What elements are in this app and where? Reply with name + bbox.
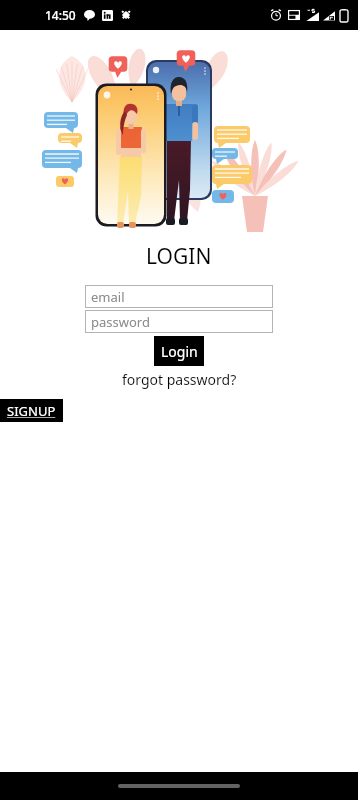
staticText: SIGNUP	[7, 402, 56, 420]
staticText: password	[91, 313, 150, 331]
staticText: 14:50	[45, 7, 76, 23]
staticText: email	[91, 288, 125, 306]
button[interactable]: Login	[154, 336, 204, 366]
staticText: LOGIN	[146, 242, 212, 271]
staticText: Login	[161, 342, 198, 361]
button[interactable]: SIGNUP	[0, 399, 63, 422]
button[interactable]: password	[85, 310, 273, 333]
staticText: forgot password?	[122, 370, 237, 389]
button[interactable]: email	[85, 285, 273, 308]
button[interactable]: forgot password?	[120, 369, 239, 390]
